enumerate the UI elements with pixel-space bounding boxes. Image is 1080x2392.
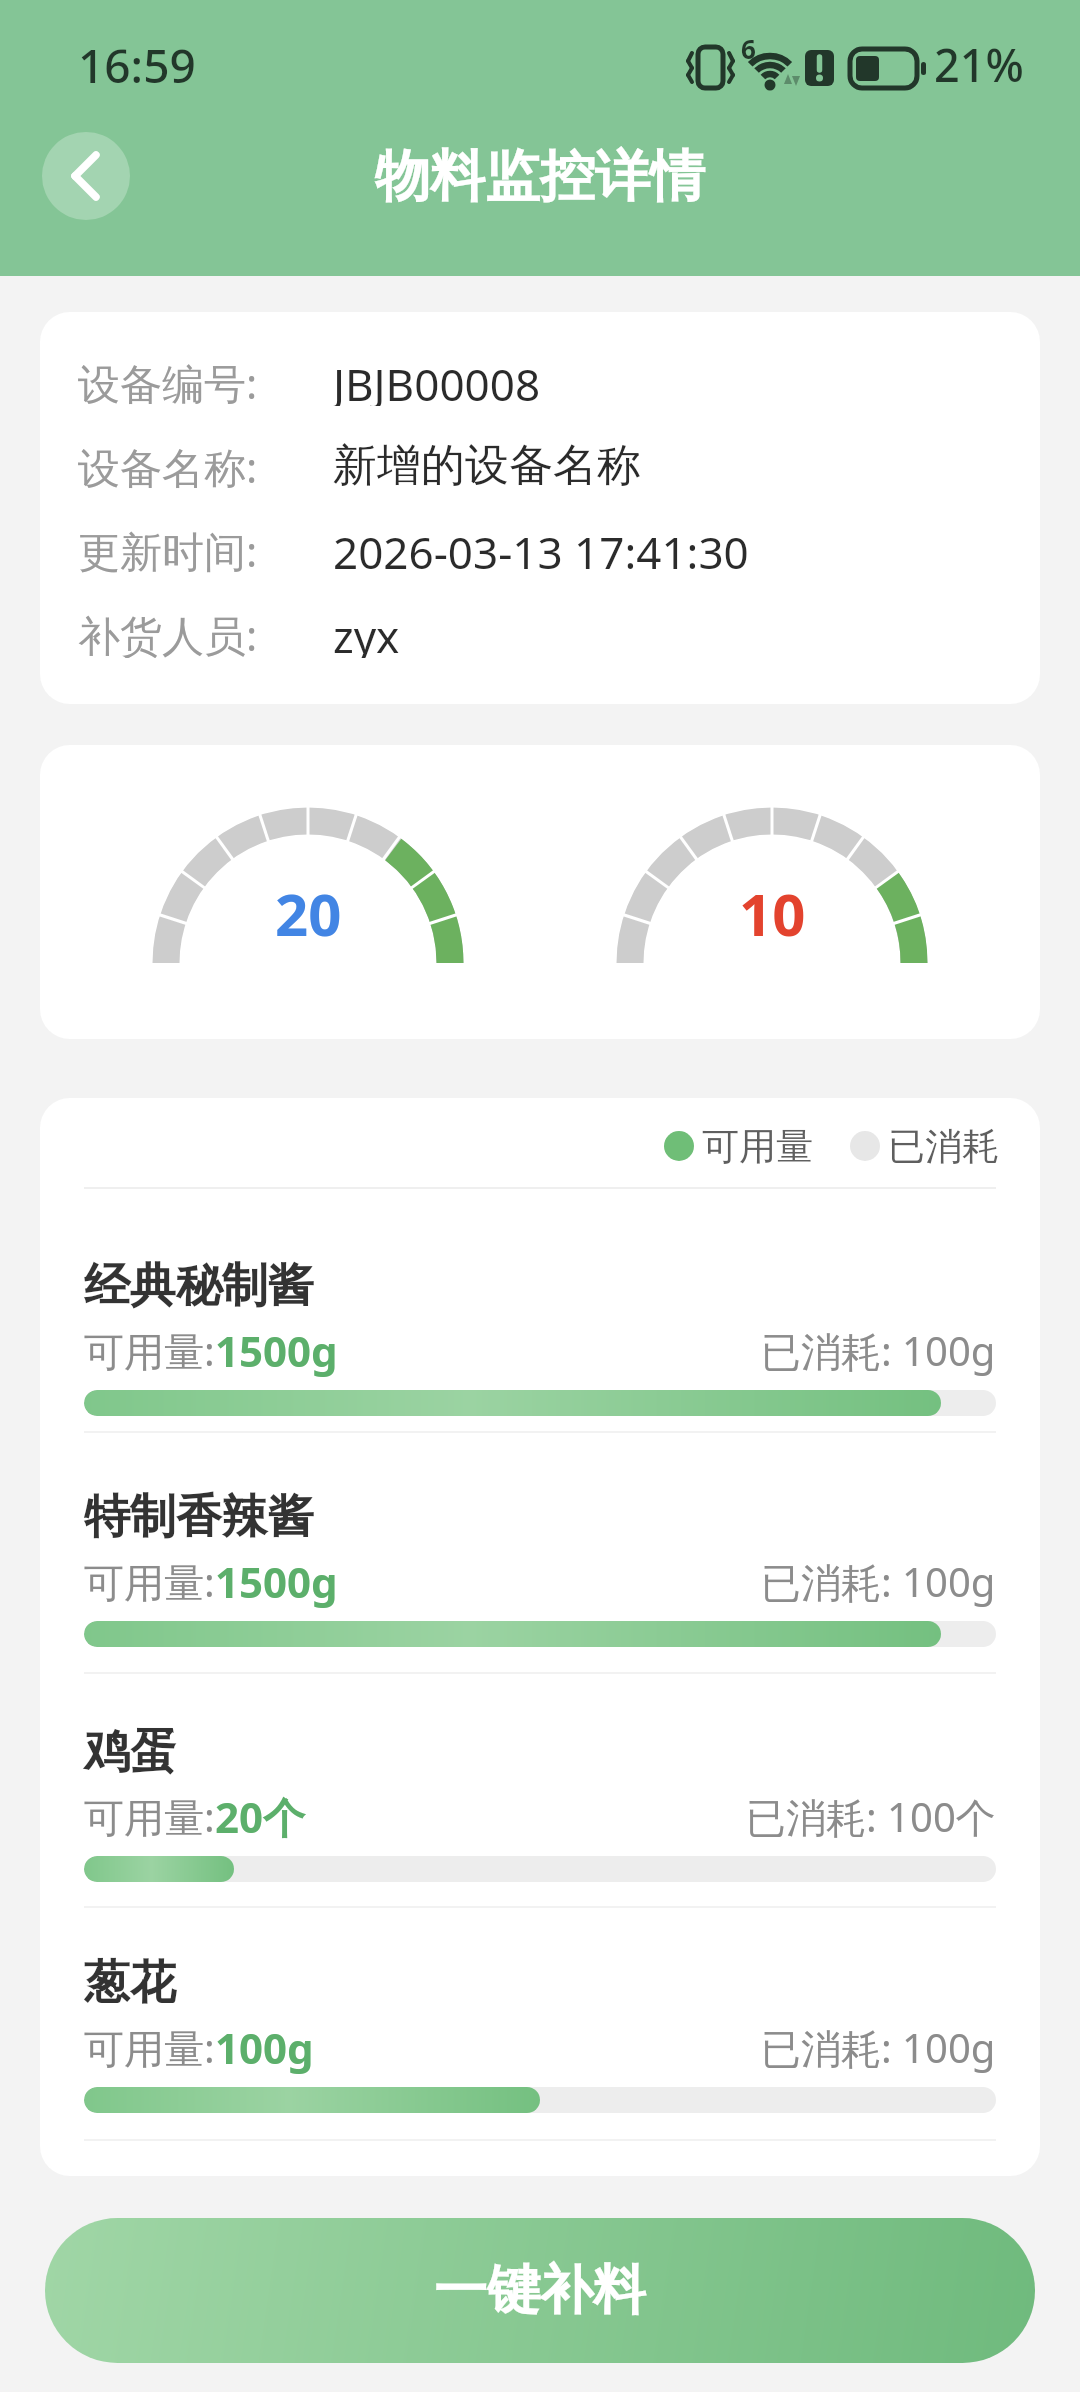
staticText: 新增的设备名称 [333,438,641,490]
staticText: 可用量 [702,1123,813,1170]
staticText: 特制香辣酱 [84,1488,314,1546]
staticText: 100g [215,2019,314,2075]
staticText: 更新时间: [78,522,258,574]
staticText: 20 [275,874,342,950]
staticText: JBJB00008 [333,354,541,406]
staticText: zyx [333,606,400,658]
staticText: 葱花 [84,1954,176,2012]
staticText: 鸡蛋 [84,1723,176,1781]
staticText: 已消耗: 100g [761,2020,996,2075]
staticText: 设备编号: [78,354,258,406]
staticText: 已消耗: 100g [761,1554,996,1609]
button[interactable] [42,132,130,220]
staticText: 1500g [215,1322,338,1378]
staticText: 物料监控详情 [375,142,705,211]
staticText: 可用量: [84,1789,215,1844]
staticText: 已消耗 [888,1123,999,1170]
staticText: 可用量: [84,1554,215,1609]
staticText: 已消耗: 100个 [746,1789,996,1844]
staticText: 2026-03-13 17:41:30 [333,522,749,574]
staticText: 20个 [215,1788,306,1844]
staticText: 1500g [215,1553,338,1609]
staticText: 可用量: [84,2020,215,2075]
staticText: 16:59 [78,34,196,92]
staticText: 10 [739,874,806,950]
staticText: 已消耗: 100g [761,1323,996,1378]
staticText: 21% [934,34,1024,92]
staticText: 6 [741,31,756,61]
staticText: 经典秘制酱 [84,1257,314,1315]
staticText: 可用量: [84,1323,215,1378]
staticText: 补货人员: [78,606,258,658]
button[interactable]: 一键补料 [45,2218,1035,2363]
staticText: 一键补料 [434,2257,646,2324]
staticText: 设备名称: [78,438,258,490]
